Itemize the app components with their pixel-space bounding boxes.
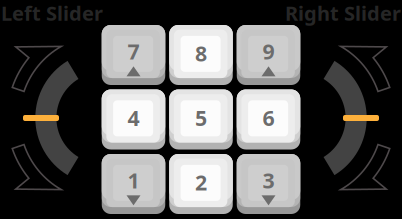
button[interactable]: 1 <box>102 154 165 214</box>
staticText: 7 <box>127 37 139 65</box>
staticText: 1 <box>127 166 139 194</box>
button[interactable]: Right slider value <box>343 115 379 121</box>
staticText: 4 <box>127 103 139 132</box>
staticText: 2 <box>195 168 207 196</box>
button[interactable]: 9 <box>237 25 300 85</box>
staticText: Left Slider <box>1 0 103 26</box>
button[interactable]: 8 <box>169 25 233 85</box>
button[interactable]: 6 <box>237 89 300 149</box>
staticText: 8 <box>195 39 207 67</box>
button[interactable]: 5 <box>169 89 233 149</box>
staticText: 3 <box>262 166 274 194</box>
button[interactable]: 2 <box>169 154 233 214</box>
button[interactable]: 4 <box>102 89 165 149</box>
staticText: 5 <box>195 103 207 132</box>
staticText: 6 <box>262 103 274 132</box>
button[interactable]: Left slider value <box>23 115 59 121</box>
button[interactable]: 7 <box>102 25 165 85</box>
button[interactable]: 3 <box>237 154 300 214</box>
staticText: 9 <box>262 37 274 65</box>
staticText: Right Slider <box>285 0 401 26</box>
